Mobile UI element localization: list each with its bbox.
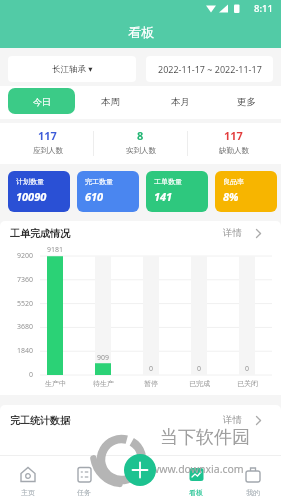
staticText: 我的 [246, 488, 260, 497]
staticText: 本周 [101, 96, 120, 108]
staticText: 主页 [21, 488, 35, 497]
staticText: 应到人数 [33, 146, 63, 155]
staticText: 详情 [223, 227, 242, 239]
button[interactable]: 长江轴承 ▾ [8, 56, 136, 82]
staticText: 0 [29, 370, 34, 380]
staticText: 长江轴承 ▾ [52, 63, 93, 75]
button[interactable]: 我的 [224, 455, 281, 500]
staticText: 5520 [17, 299, 34, 309]
button[interactable]: 看板 [168, 455, 224, 500]
staticText: 141 [154, 189, 173, 204]
button[interactable]: 今日 [8, 88, 75, 114]
staticText: 任务 [77, 488, 91, 497]
button[interactable]: 详情 [222, 413, 243, 427]
staticText: 更多 [237, 96, 256, 108]
staticText: 当下软件园 [160, 426, 250, 449]
staticText: 工单完成情况 [10, 227, 70, 240]
staticText: 缺勤人数 [219, 146, 249, 155]
staticText: 0 [149, 364, 154, 374]
staticText: www.downxia.com [151, 462, 244, 476]
button[interactable]: 2022-11-17 ~ 2022-11-17 [146, 56, 273, 82]
staticText: 已完成 [189, 379, 210, 388]
button[interactable]: 工单数量 [146, 171, 208, 212]
button[interactable]: 主页 [0, 455, 56, 500]
button[interactable]: 本周 [75, 86, 145, 117]
staticText: 610 [85, 189, 104, 204]
button[interactable]: 完工数量 [77, 171, 139, 212]
staticText: 待生产 [93, 379, 114, 388]
staticText: 看板 [189, 488, 203, 497]
staticText: 完工统计数据 [10, 414, 70, 427]
staticText: 完工数量 [85, 177, 113, 186]
staticText: 2022-11-17 ~ 2022-11-17 [158, 63, 262, 75]
button[interactable]: 本月 [145, 86, 215, 117]
staticText: 9181 [47, 245, 64, 255]
staticText: 详情 [223, 414, 242, 426]
staticText: 本月 [171, 96, 190, 108]
staticText: 计划数量 [16, 177, 44, 186]
staticText: 生产中 [45, 379, 66, 388]
staticText: 9200 [17, 251, 34, 261]
button[interactable]: 任务 [56, 455, 112, 500]
staticText: 工单数量 [154, 177, 182, 186]
staticText: 117 [224, 128, 243, 143]
staticText: 良品率 [223, 177, 244, 186]
staticText: 看板 [128, 24, 154, 40]
staticText: 实到人数 [126, 146, 156, 155]
button[interactable] [124, 454, 156, 486]
staticText: 909 [97, 353, 110, 363]
staticText: 1840 [17, 346, 34, 356]
staticText: 0 [197, 364, 202, 374]
staticText: 0 [245, 364, 250, 374]
staticText: 8 [137, 128, 144, 143]
button[interactable]: 良品率 [215, 171, 277, 212]
button[interactable]: 更多 [215, 86, 277, 117]
staticText: 8:11 [254, 2, 273, 15]
staticText: 8% [223, 189, 239, 204]
staticText: 117 [38, 128, 57, 143]
button[interactable]: 计划数量 [8, 171, 70, 212]
staticText: 暂停 [144, 379, 158, 388]
staticText: 3680 [17, 322, 34, 332]
staticText: 已关闭 [237, 379, 258, 388]
button[interactable]: 详情 [222, 226, 243, 240]
staticText: 7360 [17, 275, 34, 285]
staticText: 今日 [33, 96, 51, 107]
staticText: 10090 [16, 189, 47, 204]
